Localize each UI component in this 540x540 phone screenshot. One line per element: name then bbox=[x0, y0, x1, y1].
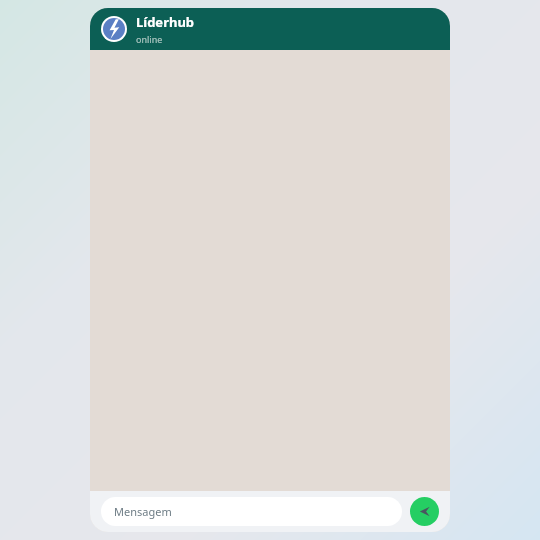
staticText: Mensagem bbox=[114, 504, 172, 519]
staticText: Líderhub bbox=[136, 13, 195, 31]
button[interactable]: Foto do perfil Líderhub bbox=[90, 8, 450, 50]
button[interactable]: Mensagem bbox=[101, 497, 402, 526]
staticText: online bbox=[136, 33, 163, 45]
button[interactable]: Enviar mensagem bbox=[410, 497, 439, 526]
other: Foto do perfil Líderhub bbox=[101, 16, 127, 42]
